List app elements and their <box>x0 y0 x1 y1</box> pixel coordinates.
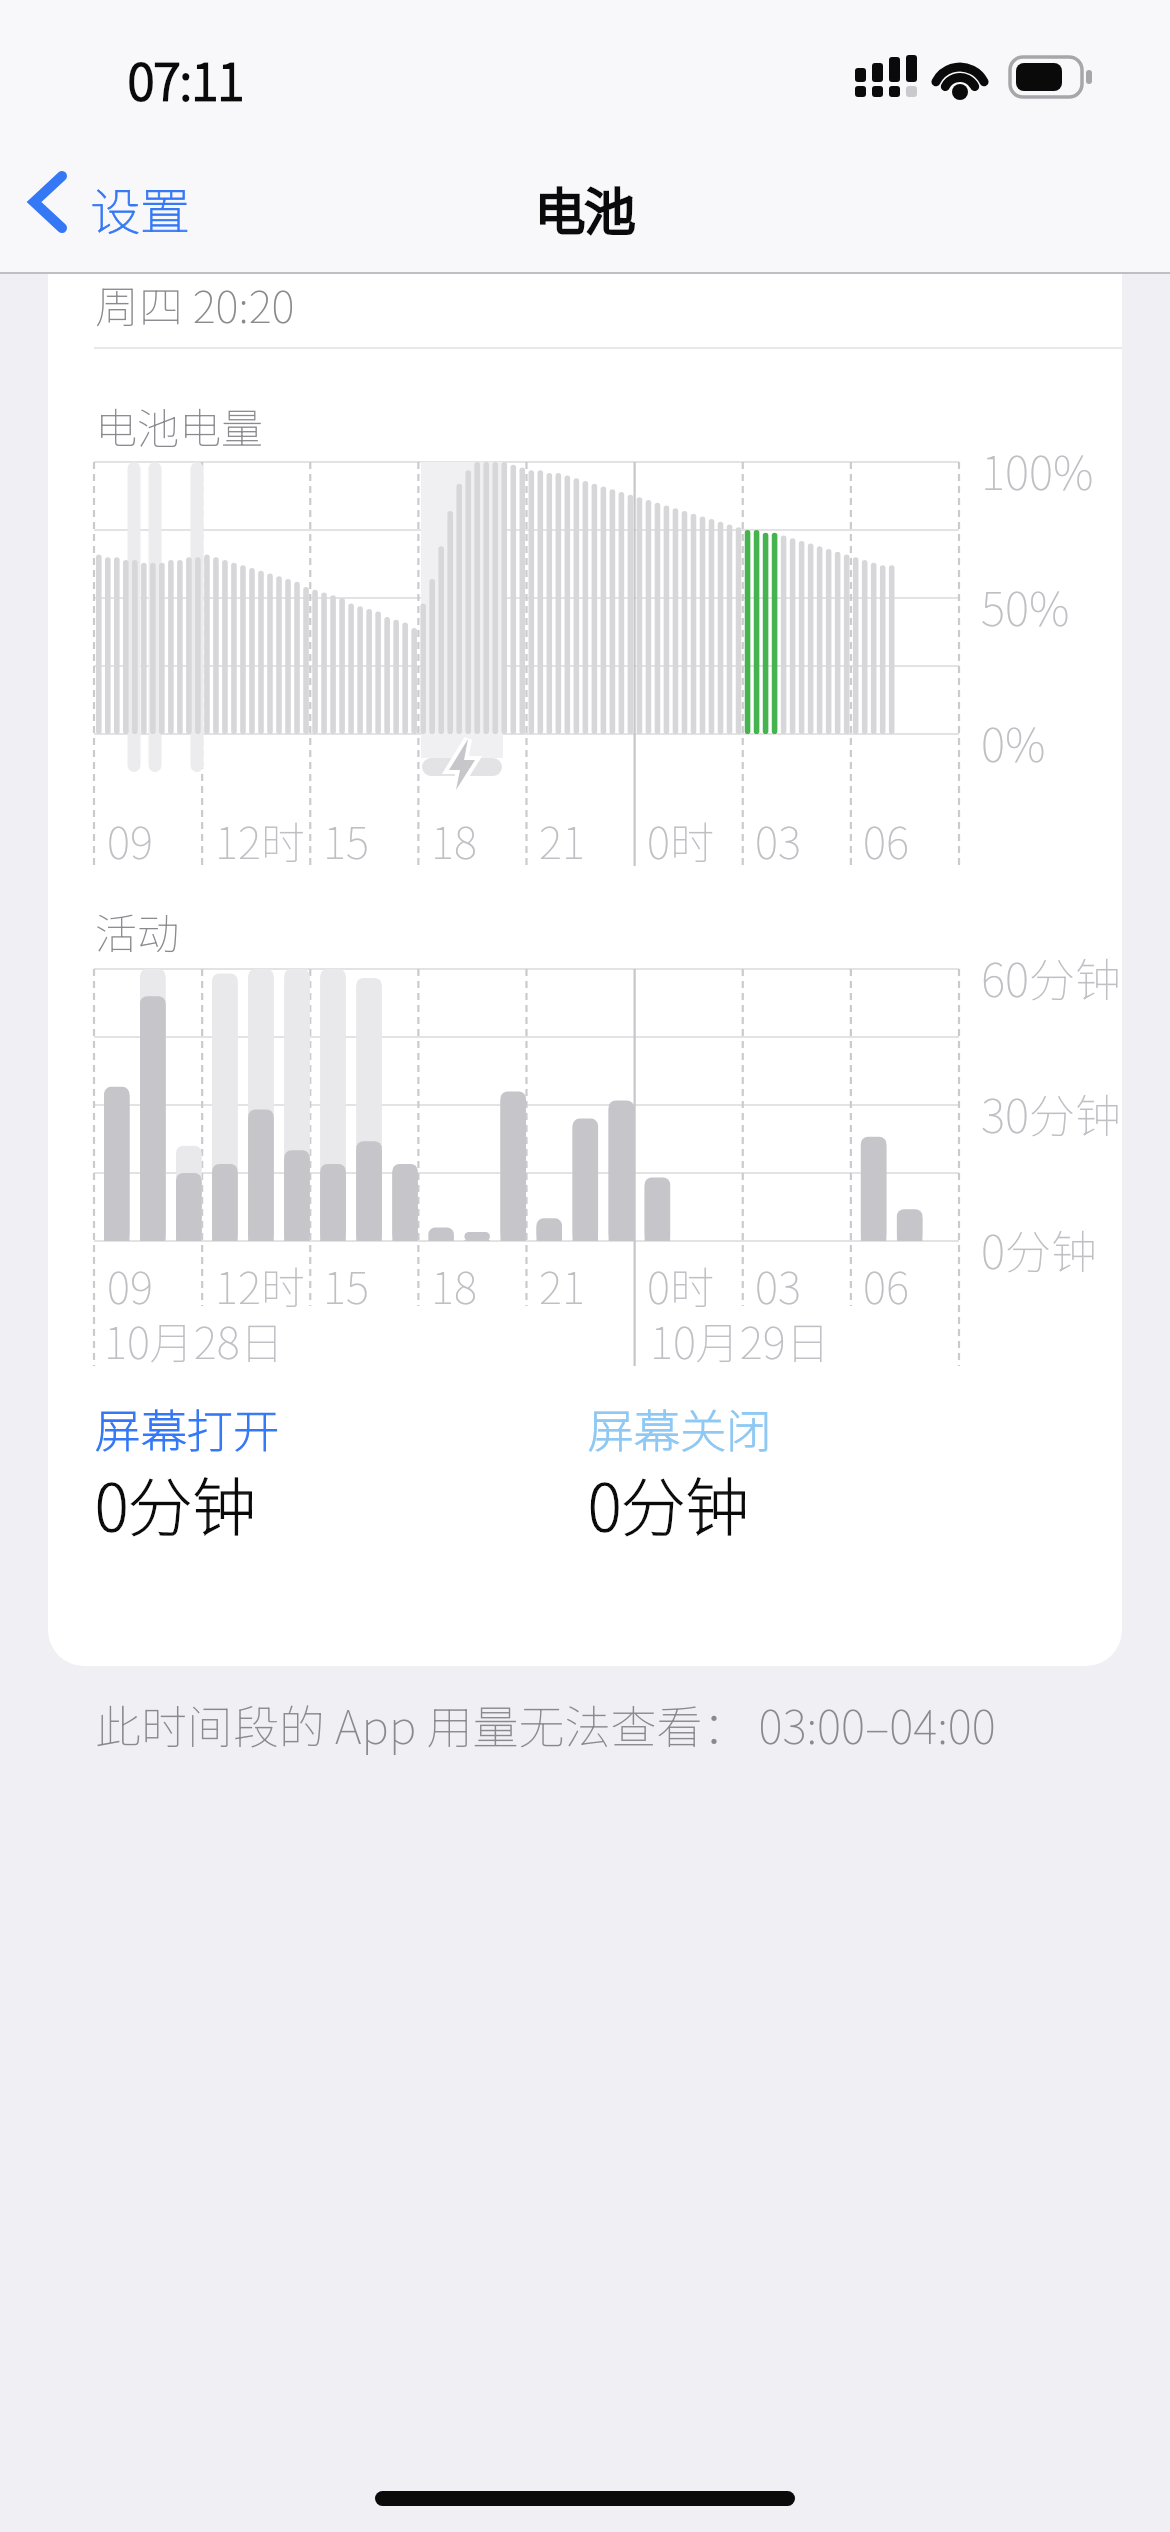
staticText: 100% <box>981 437 1094 504</box>
staticText: 活动 <box>95 900 180 961</box>
button[interactable]: 屏幕关闭 <box>588 1395 988 1555</box>
staticText: 09 <box>107 808 153 872</box>
staticText: 此时间段的 App 用量无法查看： 03:00–04:00 <box>95 1691 996 1758</box>
staticText: 60分钟 <box>981 944 1121 1011</box>
staticText: 50% <box>981 573 1070 640</box>
staticText: 电池电量 <box>95 395 264 456</box>
staticText: 0% <box>981 709 1046 776</box>
staticText: 10月29日 <box>650 1308 830 1372</box>
staticText: 18 <box>431 808 477 872</box>
staticText: 周四 20:20 <box>95 272 295 336</box>
staticText: 0分钟 <box>588 1457 750 1550</box>
staticText: 15 <box>323 808 369 872</box>
staticText: 12时 <box>215 808 305 872</box>
staticText: 0时 <box>647 1253 714 1317</box>
staticText: 03 <box>755 1253 801 1317</box>
staticText: 0分钟 <box>95 1457 257 1550</box>
button[interactable] <box>20 165 220 245</box>
staticText: 07:11 <box>128 42 244 114</box>
staticText: 30分钟 <box>981 1080 1121 1147</box>
staticText: 屏幕打开 <box>95 1395 279 1462</box>
staticText: 03 <box>755 808 801 872</box>
staticText: 0分钟 <box>95 1457 257 1550</box>
staticText: 21 <box>539 1253 585 1317</box>
staticText: 18 <box>431 1253 477 1317</box>
staticText: 电池 <box>535 172 635 244</box>
staticText: 屏幕打开 <box>95 1395 279 1462</box>
staticText: 0分钟 <box>588 1457 750 1550</box>
staticText: 15 <box>323 1253 369 1317</box>
staticText: 0分钟 <box>981 1216 1097 1283</box>
staticText: 0时 <box>647 808 714 872</box>
staticText: 设置 <box>90 172 190 244</box>
staticText: 电池 <box>535 172 635 244</box>
staticText: 屏幕关闭 <box>588 1395 772 1462</box>
staticText: 07:11 <box>128 42 244 114</box>
button[interactable]: 屏幕打开 <box>95 1395 495 1555</box>
staticText: 06 <box>863 808 909 872</box>
staticText: 设置 <box>90 172 190 244</box>
staticText: 06 <box>863 1253 909 1317</box>
staticText: 10月28日 <box>104 1308 284 1372</box>
staticText: 12时 <box>215 1253 305 1317</box>
staticText: 屏幕关闭 <box>588 1395 772 1462</box>
staticText: 09 <box>107 1253 153 1317</box>
staticText: 21 <box>539 808 585 872</box>
